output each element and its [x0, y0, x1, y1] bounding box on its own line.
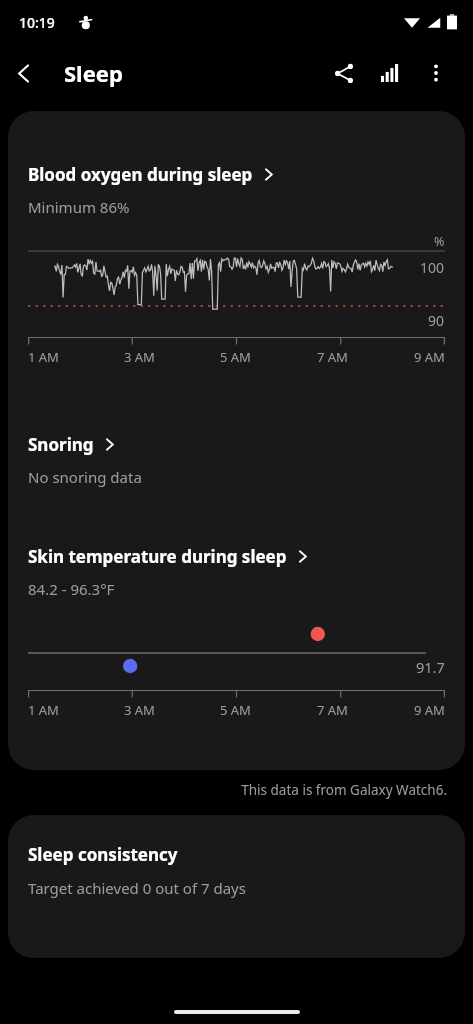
staticText: 100	[420, 258, 445, 277]
staticText: 1 AM	[28, 701, 59, 719]
staticText: 5 AM	[220, 701, 251, 719]
staticText: 9 AM	[414, 701, 445, 719]
staticText: Minimum 86%	[28, 197, 130, 217]
staticText: 3 AM	[124, 701, 155, 719]
button[interactable]: Skin temperature during sleep	[8, 545, 465, 599]
staticText: 9 AM	[414, 348, 445, 366]
button[interactable]: Share	[321, 50, 367, 96]
staticText: 90	[428, 311, 445, 330]
staticText: Sleep consistency	[28, 843, 178, 866]
button[interactable]: More options	[413, 50, 459, 96]
staticText: Blood oxygen during sleep	[28, 163, 253, 186]
button[interactable]: Snoring	[8, 433, 465, 487]
staticText: Snoring	[28, 433, 94, 456]
staticText: 5 AM	[220, 348, 251, 366]
staticText: 3 AM	[124, 348, 155, 366]
staticText: Target achieved 0 out of 7 days	[28, 878, 246, 898]
staticText: 91.7	[416, 657, 445, 677]
button[interactable]: Blood oxygen during sleep	[8, 163, 465, 217]
staticText: 10:19	[19, 13, 55, 32]
staticText: This data is from Galaxy Watch6.	[0, 781, 447, 799]
staticText: 7 AM	[317, 701, 348, 719]
button[interactable]: Sleep consistency	[8, 815, 465, 958]
staticText: 1 AM	[28, 348, 59, 366]
staticText: Skin temperature during sleep	[28, 545, 287, 568]
button[interactable]: Back	[0, 49, 48, 97]
staticText: 7 AM	[317, 348, 348, 366]
staticText: %	[434, 233, 445, 250]
staticText: No snoring data	[28, 467, 142, 487]
button[interactable]: Charts	[367, 50, 413, 96]
staticText: Sleep	[64, 58, 123, 88]
staticText: 84.2 - 96.3°F	[28, 579, 115, 599]
